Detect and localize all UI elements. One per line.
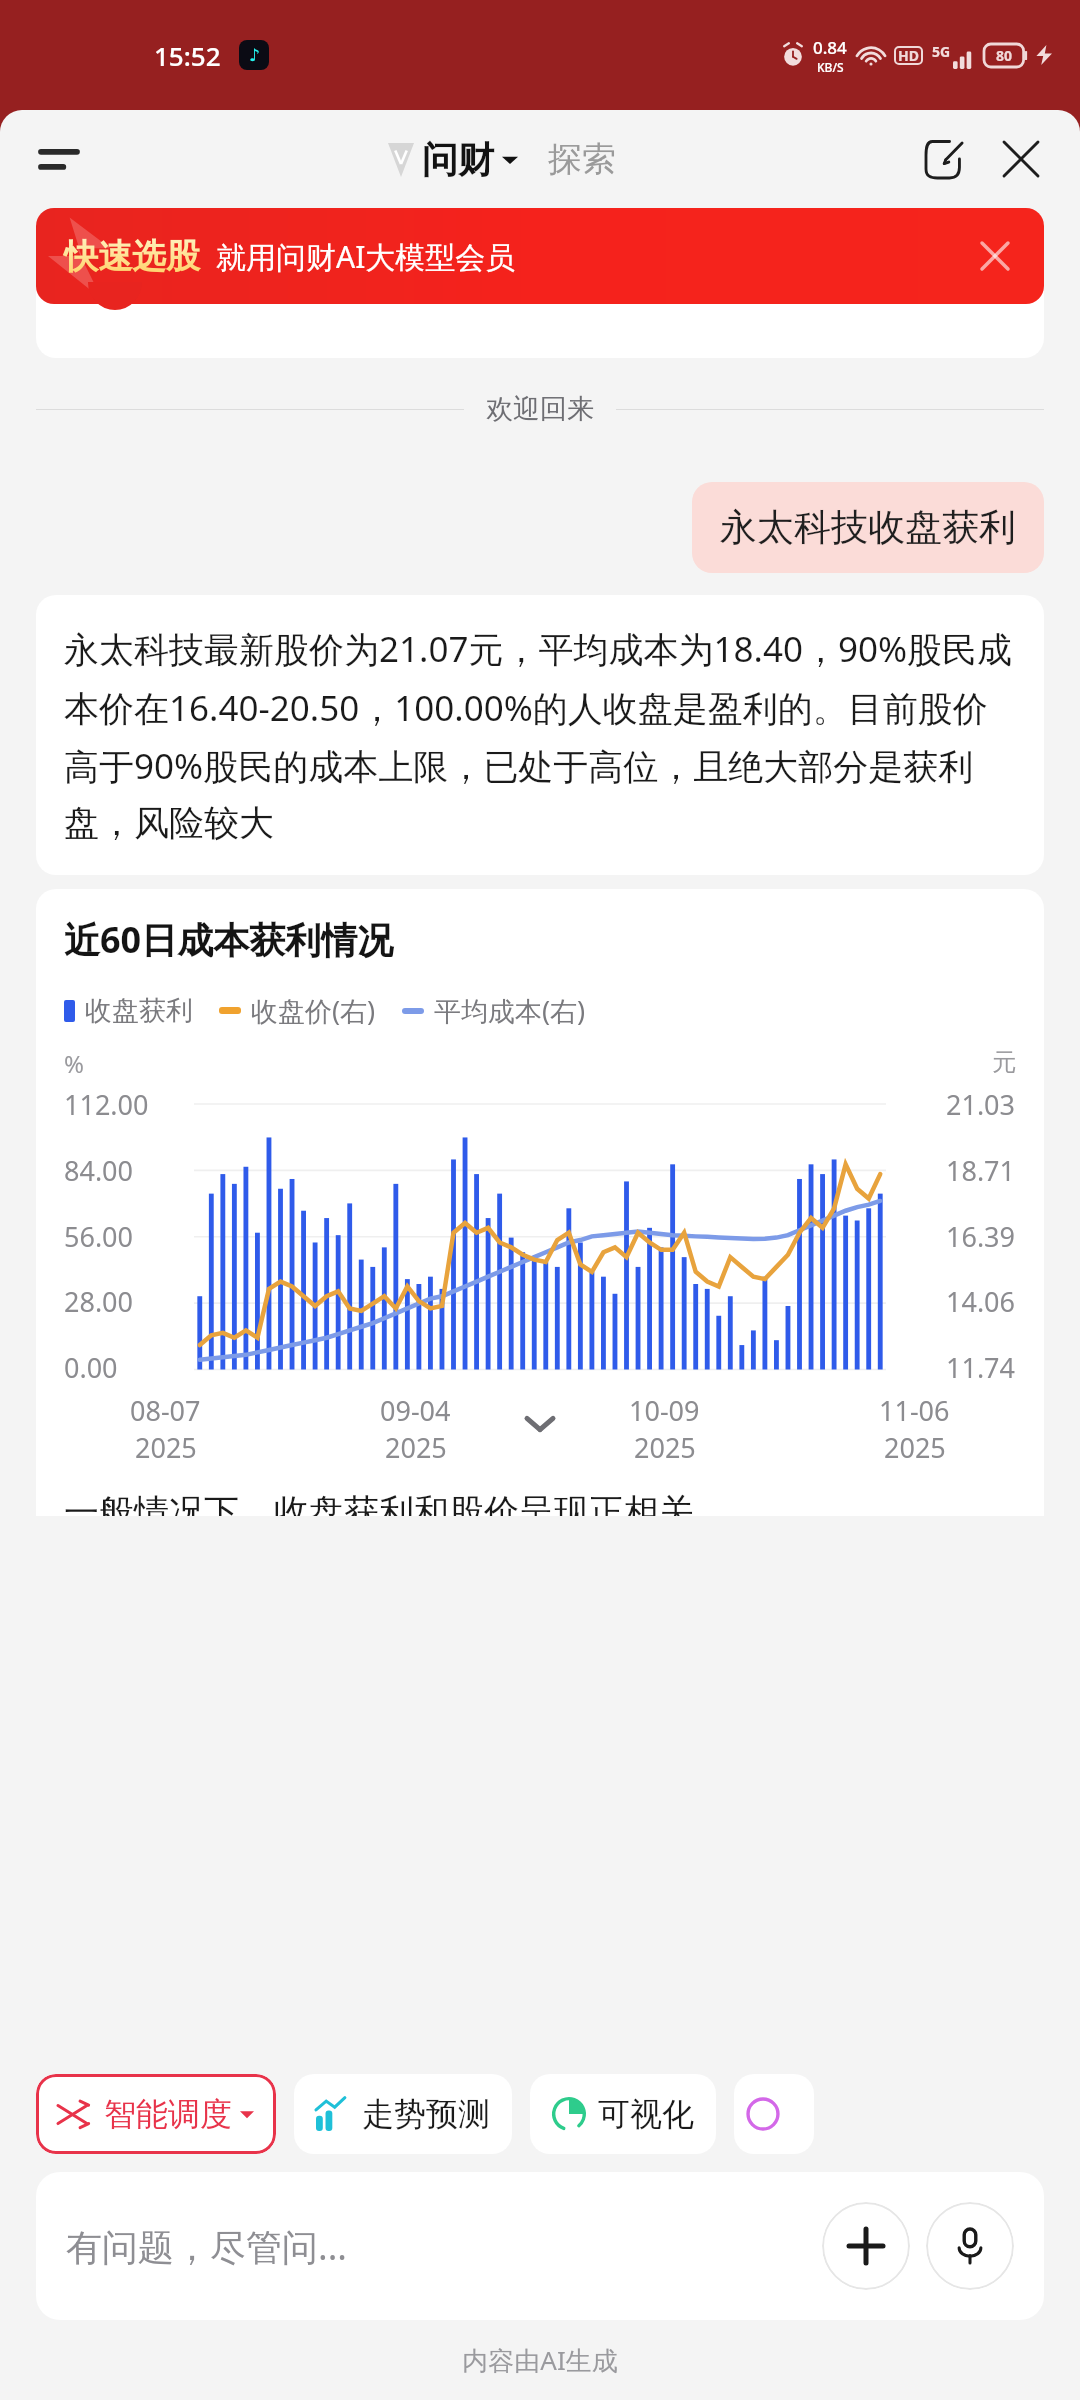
staticText: 收盘价(右)	[251, 992, 376, 1029]
button[interactable]: Add attachment	[822, 2202, 910, 2290]
staticText: 56.00	[64, 1218, 134, 1255]
button[interactable]: 快速选股	[36, 208, 1044, 304]
button[interactable]: 有问题，尽管问...	[36, 2172, 1044, 2320]
button[interactable]: 永太科技最新股价为21.07元，平均成本为18.40，90%股民成本价在16.4…	[36, 595, 1044, 875]
staticText: 80	[996, 46, 1013, 65]
staticText: 11-06	[879, 1392, 950, 1429]
staticText: 16.39	[946, 1218, 1016, 1255]
staticText: 2025	[135, 1429, 197, 1466]
staticText: 问财	[422, 137, 494, 182]
staticText: 08-07	[130, 1392, 201, 1429]
staticText: %	[64, 1047, 84, 1080]
staticText: KB/S	[817, 59, 844, 75]
button[interactable]: Expand	[502, 1386, 578, 1462]
staticText: 收盘获利	[85, 994, 193, 1028]
staticText: 112.00	[64, 1086, 149, 1123]
button[interactable]: Menu	[28, 128, 90, 190]
staticText: 智能调度	[104, 2094, 232, 2134]
staticText: 一般情况下，收盘获利和股价呈现正相关	[64, 1490, 694, 1516]
staticText: 平均成本(右)	[434, 992, 586, 1029]
staticText: HD	[898, 46, 919, 65]
staticText: 欢迎回来	[486, 392, 594, 426]
staticText: 永太科技收盘获利	[720, 504, 1016, 551]
staticText: 走势预测	[362, 2094, 490, 2134]
button[interactable]: More tools	[734, 2074, 814, 2154]
staticText: 2025	[884, 1429, 946, 1466]
staticText: 0.00	[64, 1349, 118, 1386]
staticText: 永太科技最新股价为21.07元，平均成本为18.40，90%股民成本价在16.4…	[64, 625, 1016, 845]
button[interactable]: Voice input	[926, 2202, 1014, 2290]
staticText: 18.71	[946, 1152, 1016, 1189]
staticText: 0.84	[813, 36, 847, 59]
staticText: 快速选股	[64, 235, 200, 278]
staticText: 探索	[548, 138, 616, 181]
staticText: 2025	[634, 1429, 696, 1466]
staticText: 11.74	[946, 1349, 1016, 1386]
button[interactable]: 探索	[544, 132, 620, 187]
button[interactable]: Dismiss banner	[972, 233, 1018, 279]
button[interactable]: 智能调度	[36, 2074, 276, 2154]
staticText: 5G	[932, 42, 951, 61]
staticText: ♪	[249, 45, 260, 65]
staticText: 可视化	[598, 2094, 694, 2134]
button[interactable]: Close	[990, 128, 1052, 190]
staticText: 15:52	[154, 38, 221, 73]
staticText: 21.03	[946, 1086, 1016, 1123]
staticText: 就用问财AI大模型会员	[216, 236, 516, 277]
staticText: 28.00	[64, 1283, 134, 1320]
staticText: 有问题，尽管问...	[66, 2222, 347, 2271]
staticText: 2025	[385, 1429, 447, 1466]
staticText: 10-09	[629, 1392, 700, 1429]
button[interactable]: 问财	[384, 137, 522, 182]
staticText: 内容由AI生成	[462, 2342, 618, 2378]
staticText: 84.00	[64, 1152, 134, 1189]
button[interactable]: 走势预测	[294, 2074, 512, 2154]
button[interactable]: 可视化	[530, 2074, 716, 2154]
button[interactable]: 永太科技收盘获利	[692, 482, 1044, 573]
staticText: 09-04	[380, 1392, 451, 1429]
button[interactable]: New chat	[914, 128, 976, 190]
staticText: 近60日成本获利情况	[64, 915, 394, 964]
staticText: 14.06	[946, 1283, 1016, 1320]
staticText: 元	[992, 1047, 1016, 1077]
